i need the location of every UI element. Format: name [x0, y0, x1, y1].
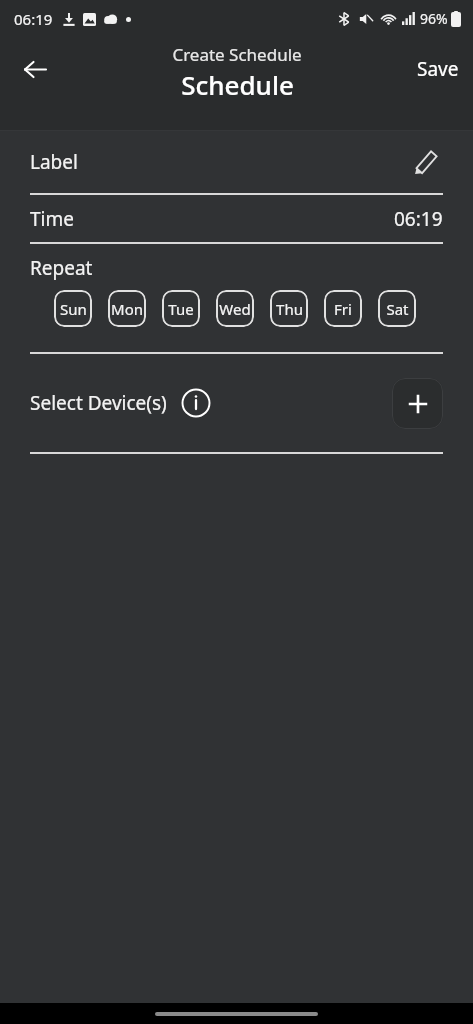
- staticText: 06:19: [14, 9, 53, 29]
- staticText: Schedule: [181, 67, 294, 102]
- button[interactable]: Edit label: [409, 145, 443, 179]
- staticText: Sat: [386, 299, 409, 319]
- button[interactable]: Wed: [216, 290, 254, 327]
- button[interactable]: Tue: [162, 290, 200, 327]
- staticText: 06:19: [394, 206, 443, 232]
- staticText: Create Schedule: [172, 43, 302, 66]
- button[interactable]: Fri: [324, 290, 362, 327]
- staticText: Save: [417, 56, 459, 82]
- staticText: Tue: [168, 299, 194, 319]
- button[interactable]: Thu: [270, 290, 308, 327]
- button[interactable]: Add device: [392, 378, 443, 429]
- button[interactable]: Time: [0, 195, 473, 242]
- button[interactable]: Mon: [108, 290, 146, 327]
- button[interactable]: Back: [10, 44, 60, 94]
- staticText: Select Device(s): [30, 390, 167, 416]
- staticText: Thu: [276, 299, 303, 319]
- button[interactable]: Label: [0, 131, 473, 193]
- staticText: Wed: [219, 299, 251, 319]
- staticText: Mon: [111, 299, 143, 319]
- button[interactable]: Sat: [378, 290, 416, 327]
- button[interactable]: Information: [180, 387, 212, 419]
- staticText: Fri: [334, 299, 352, 319]
- staticText: 96%: [420, 9, 448, 28]
- staticText: Sun: [60, 299, 87, 319]
- button[interactable]: Save: [403, 48, 473, 90]
- staticText: Time: [30, 206, 74, 232]
- button[interactable]: Sun: [54, 290, 92, 327]
- staticText: Repeat: [30, 255, 93, 281]
- staticText: Label: [30, 149, 78, 175]
